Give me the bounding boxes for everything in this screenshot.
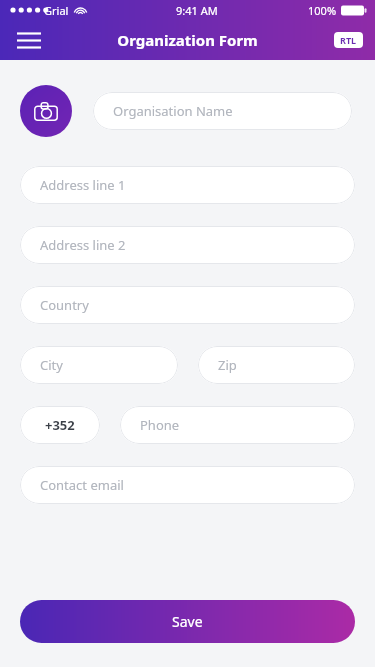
staticText: +352 [45,416,75,434]
button[interactable]: Address line 1 [20,166,355,204]
staticText: City [40,356,63,374]
staticText: RTL [340,34,357,46]
button[interactable]: +352 [20,406,100,444]
button[interactable]: Country [20,286,355,324]
staticText: 9:41 AM [176,3,218,18]
button[interactable]: Contact email [20,466,355,504]
staticText: Contact email [40,476,124,494]
button[interactable]: Menu [12,23,46,57]
staticText: Address line 2 [40,236,126,254]
button[interactable]: RTL [334,32,363,48]
button[interactable]: Save [20,600,355,643]
button[interactable]: Phone [120,406,355,444]
staticText: Country [40,296,89,314]
button[interactable]: Address line 2 [20,226,355,264]
staticText: Address line 1 [40,176,126,194]
button[interactable]: Organisation Name [93,92,352,130]
staticText: Organization Form [117,30,258,50]
button[interactable]: Take photo [20,85,72,137]
staticText: Organisation Name [113,102,233,120]
staticText: 100% [308,3,337,18]
button[interactable]: Zip [198,346,355,384]
staticText: Grial [44,3,69,18]
staticText: Save [172,612,203,631]
staticText: Phone [140,416,180,434]
button[interactable]: City [20,346,178,384]
staticText: Zip [218,356,237,374]
